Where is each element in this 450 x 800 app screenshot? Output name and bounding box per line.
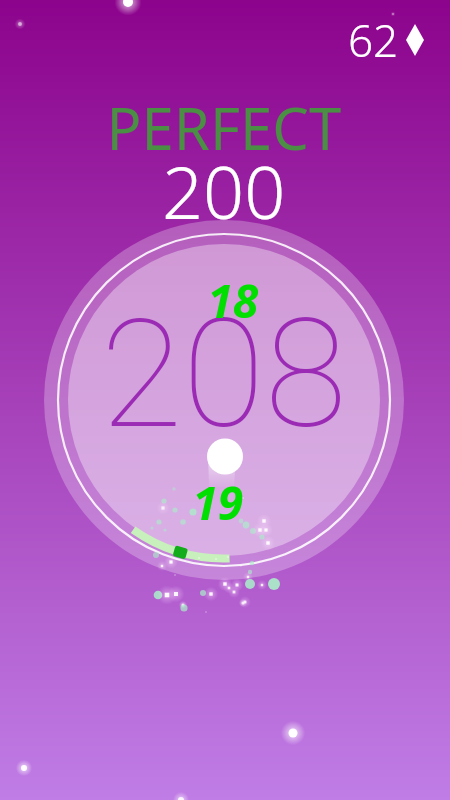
staticText: 62 [348,10,399,70]
button[interactable]: Gems [348,10,424,70]
